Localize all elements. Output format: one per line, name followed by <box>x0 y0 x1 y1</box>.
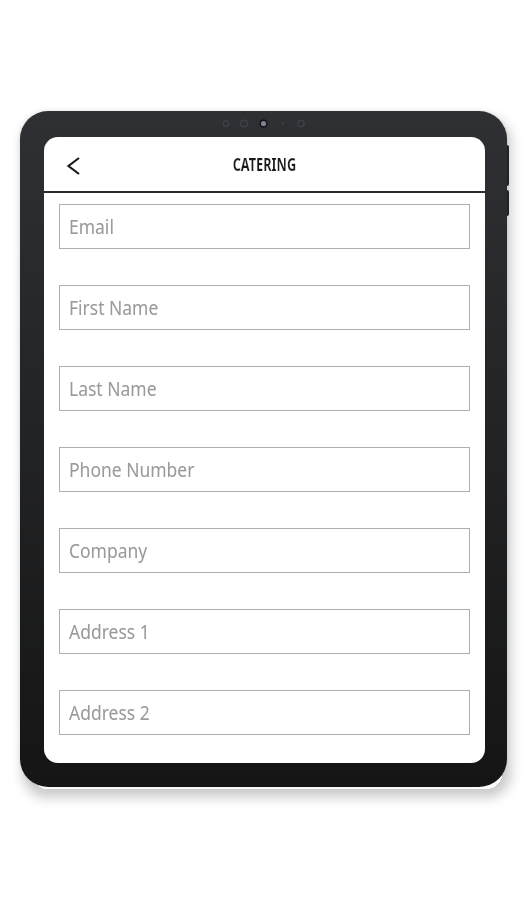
button[interactable]: First Name <box>59 285 470 330</box>
button[interactable]: Phone Number <box>59 447 470 492</box>
button[interactable]: Email <box>59 204 470 249</box>
button[interactable]: Last Name <box>59 366 470 411</box>
button[interactable]: Company <box>59 528 470 573</box>
staticText: Last Name <box>69 376 157 402</box>
staticText: CATERING <box>233 153 296 176</box>
button[interactable] <box>51 144 95 188</box>
staticText: Company <box>69 538 148 564</box>
button[interactable]: Address 1 <box>59 609 470 654</box>
staticText: Email <box>69 214 114 240</box>
staticText: Address 2 <box>69 700 150 726</box>
staticText: First Name <box>69 295 159 321</box>
button[interactable]: Address 2 <box>59 690 470 735</box>
staticText: Phone Number <box>69 457 195 483</box>
staticText: Address 1 <box>69 619 150 645</box>
